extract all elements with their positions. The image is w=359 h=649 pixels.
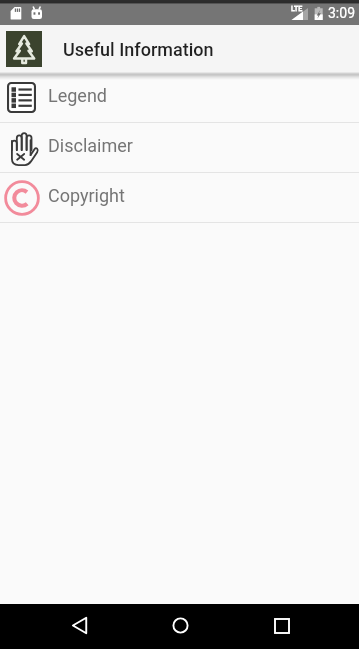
button[interactable]: Legend <box>0 73 359 122</box>
staticText: LTE <box>291 5 303 13</box>
staticText: Copyright <box>48 185 125 206</box>
button[interactable]: Back <box>55 604 103 649</box>
staticText: Disclaimer <box>48 135 133 156</box>
button[interactable]: Copyright <box>0 173 359 222</box>
button[interactable]: Recent apps <box>258 604 306 649</box>
staticText: 3:09 <box>328 5 355 21</box>
staticText: Legend <box>48 85 107 106</box>
button[interactable]: Disclaimer <box>0 123 359 172</box>
button[interactable]: App logo <box>6 31 42 67</box>
button[interactable]: Home <box>156 604 204 649</box>
staticText: Useful Information <box>63 39 214 60</box>
